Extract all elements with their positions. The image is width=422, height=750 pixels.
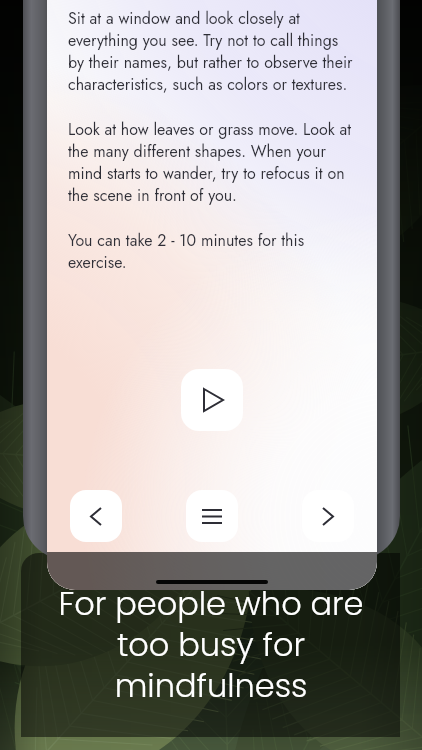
staticText: For people who are too busy for mindfuln… xyxy=(58,581,364,708)
staticText: You can take 2 - 10 minutes for this exe… xyxy=(68,229,305,274)
button[interactable]: Menu xyxy=(186,490,238,542)
button[interactable]: Play xyxy=(181,369,243,431)
staticText: Look at how leaves or grass move. Look a… xyxy=(68,118,352,207)
button[interactable]: Previous xyxy=(70,490,122,542)
staticText: Sit at a window and look closely at ever… xyxy=(68,7,353,96)
button[interactable]: Next xyxy=(302,490,354,542)
